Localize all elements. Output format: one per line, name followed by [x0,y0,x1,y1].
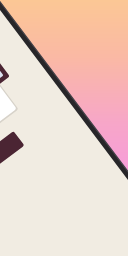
button[interactable]: Android app promotional artwork [0,0,128,256]
